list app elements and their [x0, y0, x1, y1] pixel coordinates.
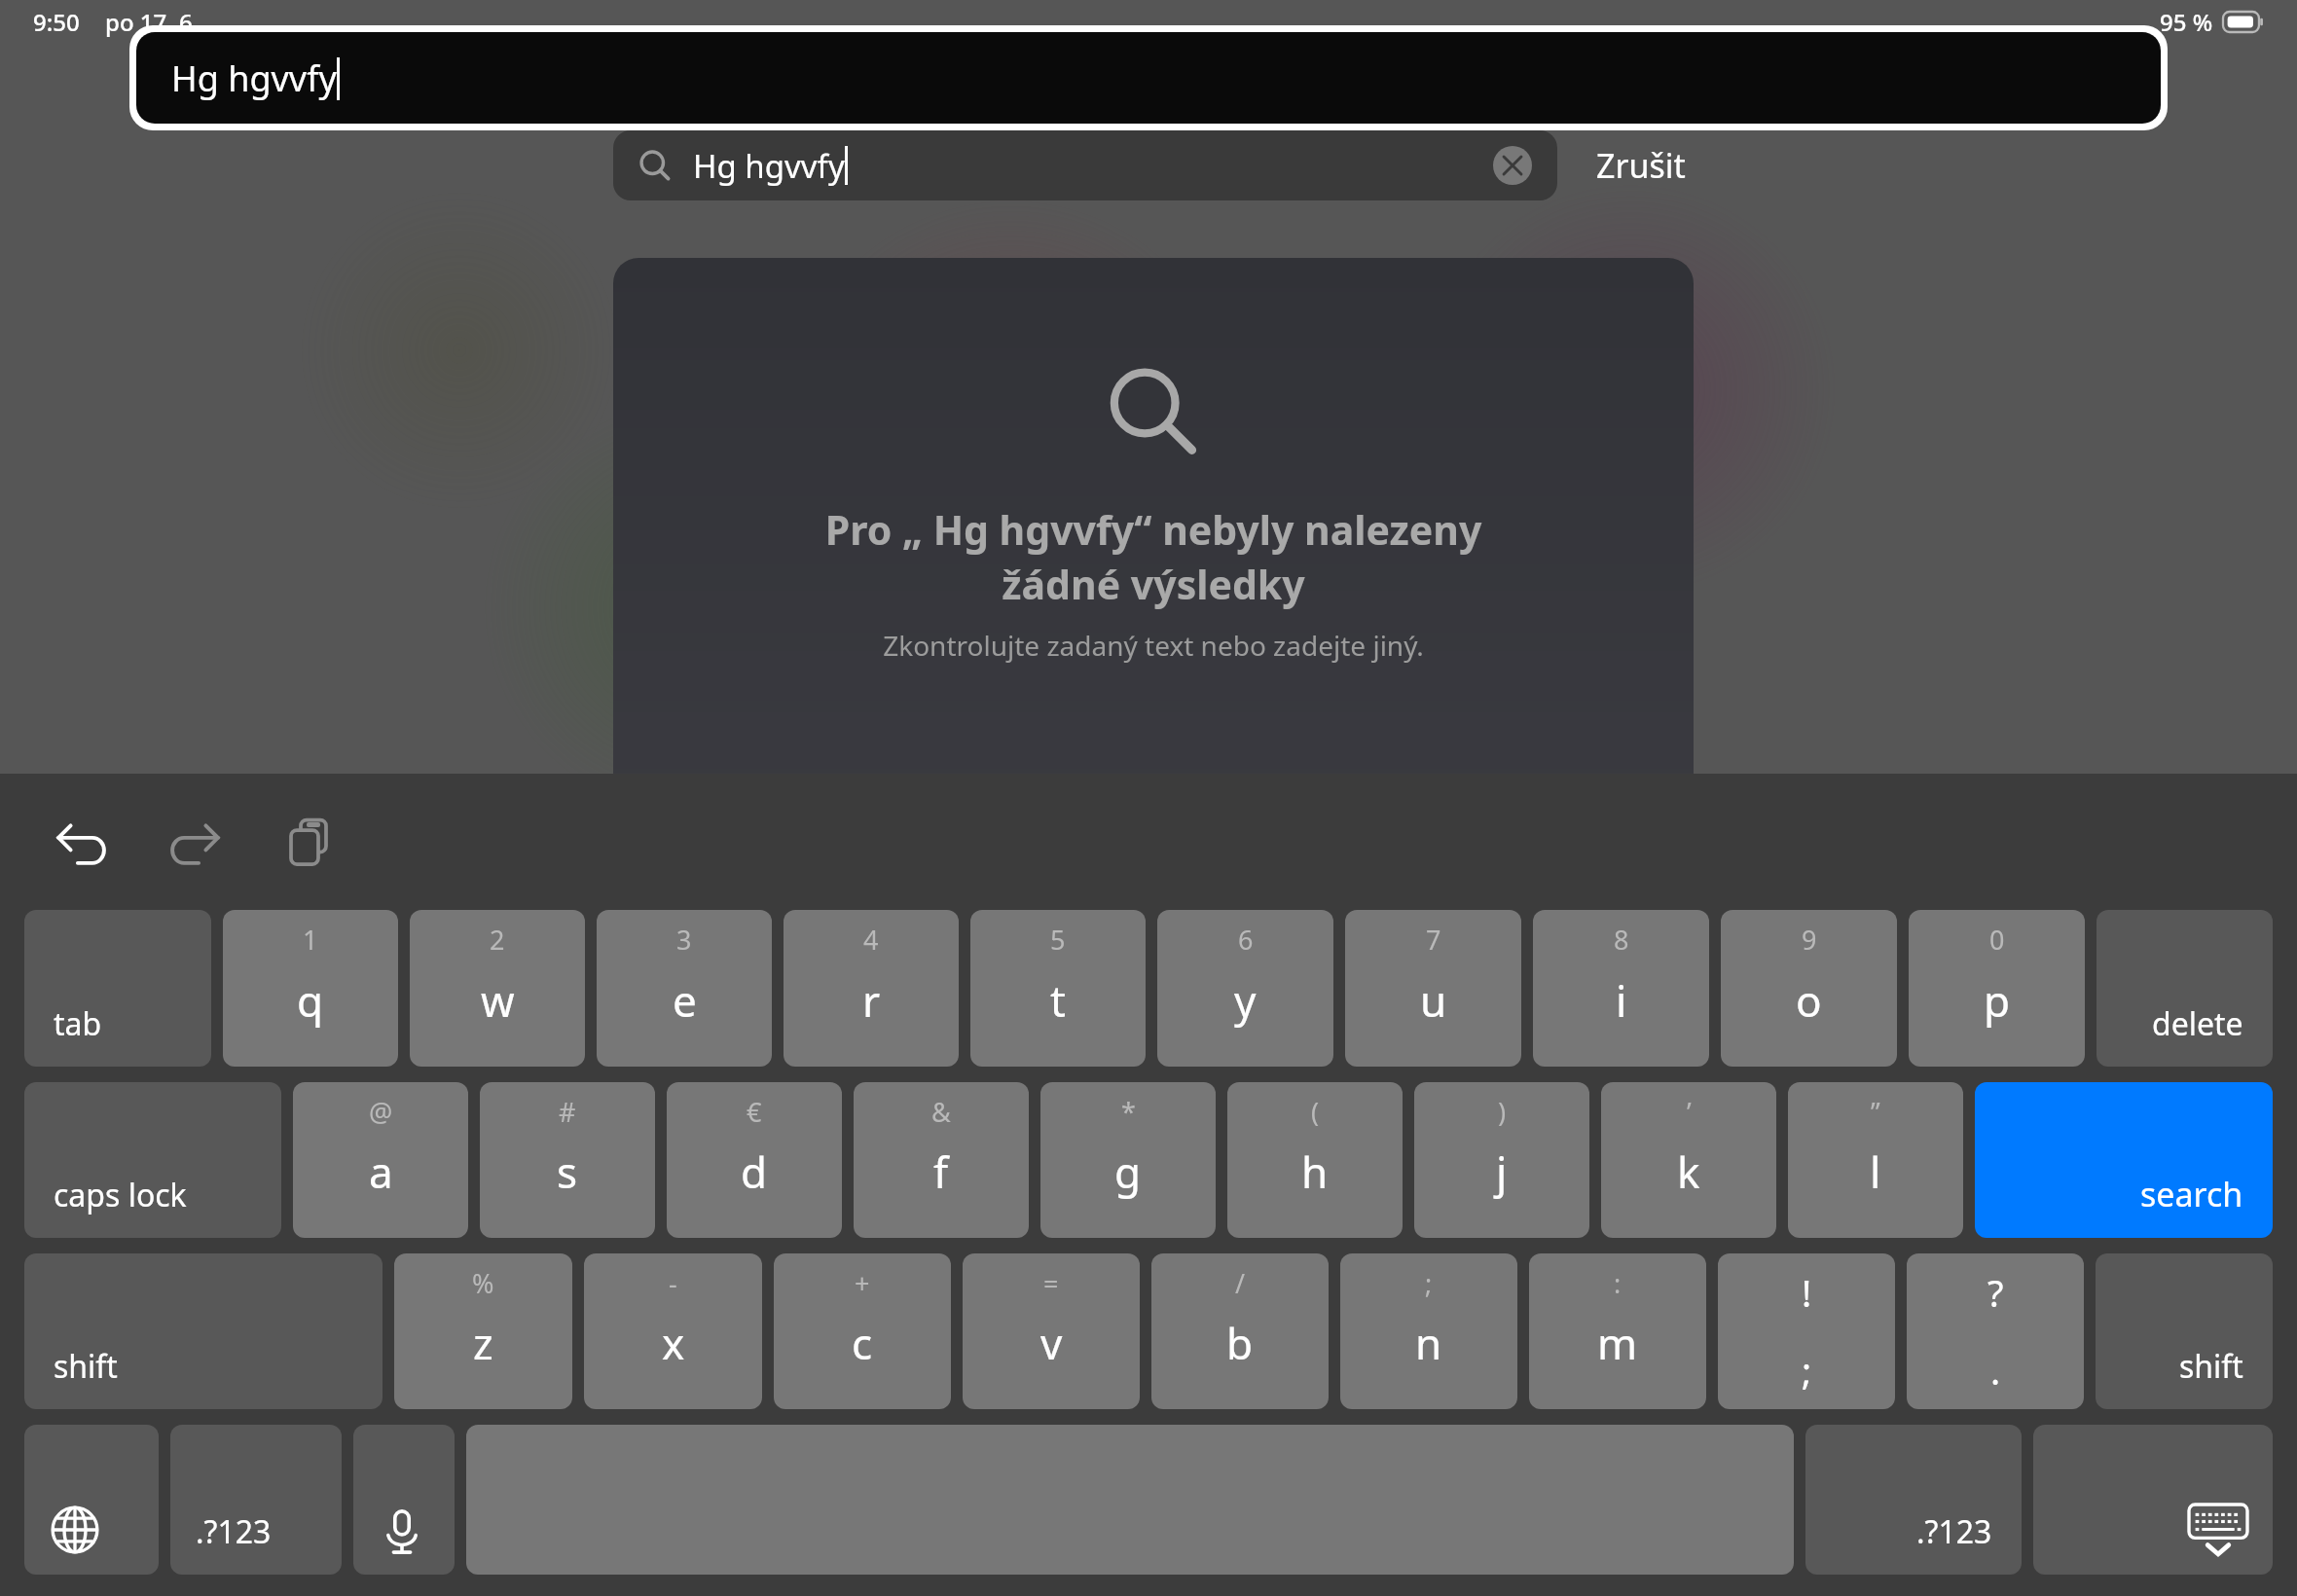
- staticText: €: [747, 1094, 762, 1130]
- staticText: p: [1984, 971, 2011, 1030]
- staticText: po 17. 6.: [105, 6, 200, 38]
- staticText: *: [1121, 1094, 1136, 1130]
- button[interactable]: .?123: [170, 1425, 342, 1575]
- staticText: 0: [1989, 922, 2005, 958]
- button[interactable]: ;: [1340, 1253, 1517, 1409]
- staticText: =: [1043, 1265, 1059, 1301]
- staticText: caps lock: [54, 1174, 187, 1216]
- staticText: delete: [2152, 1002, 2243, 1045]
- staticText: 2: [490, 922, 505, 958]
- button[interactable]: 9: [1721, 910, 1897, 1067]
- staticText: ’: [1687, 1094, 1692, 1130]
- staticText: -: [669, 1265, 677, 1301]
- button[interactable]: *: [1040, 1082, 1216, 1238]
- button[interactable]: #: [480, 1082, 655, 1238]
- button[interactable]: %: [394, 1253, 572, 1409]
- button[interactable]: Paste: [269, 800, 352, 884]
- staticText: h: [1301, 1143, 1329, 1201]
- button[interactable]: Zrušit: [1581, 135, 1701, 196]
- staticText: +: [855, 1265, 870, 1301]
- staticText: ”: [1871, 1094, 1880, 1130]
- staticText: shift: [2179, 1345, 2243, 1388]
- button[interactable]: Hide keyboard: [2033, 1425, 2273, 1575]
- button[interactable]: (: [1227, 1082, 1403, 1238]
- button[interactable]: Next keyboard: [24, 1425, 159, 1575]
- staticText: :: [1614, 1265, 1622, 1301]
- staticText: y: [1234, 971, 1257, 1030]
- staticText: f: [933, 1143, 949, 1201]
- staticText: z: [473, 1314, 493, 1372]
- button[interactable]: 4: [784, 910, 959, 1067]
- staticText: e: [673, 971, 697, 1030]
- button[interactable]: Hg hgvvfy: [613, 130, 1557, 200]
- button[interactable]: €: [667, 1082, 842, 1238]
- button[interactable]: &: [854, 1082, 1029, 1238]
- staticText: t: [1050, 971, 1066, 1030]
- staticText: d: [741, 1143, 768, 1201]
- button[interactable]: delete: [2096, 910, 2273, 1067]
- button[interactable]: 8: [1533, 910, 1709, 1067]
- staticText: @: [369, 1094, 393, 1130]
- button[interactable]: caps lock: [24, 1082, 281, 1238]
- button[interactable]: -: [584, 1253, 762, 1409]
- staticText: r: [862, 971, 881, 1030]
- button[interactable]: ?: [1907, 1253, 2084, 1409]
- button[interactable]: 6: [1157, 910, 1333, 1067]
- staticText: 1: [303, 922, 318, 958]
- button[interactable]: 1: [223, 910, 398, 1067]
- button[interactable]: @: [293, 1082, 468, 1238]
- button[interactable]: .?123: [1805, 1425, 2022, 1575]
- staticText: q: [297, 971, 324, 1030]
- staticText: x: [662, 1314, 685, 1372]
- button[interactable]: tab: [24, 910, 211, 1067]
- button[interactable]: 2: [410, 910, 585, 1067]
- button[interactable]: /: [1151, 1253, 1329, 1409]
- staticText: !: [1802, 1267, 1812, 1318]
- staticText: 8: [1614, 922, 1629, 958]
- staticText: 7: [1426, 922, 1441, 958]
- staticText: ): [1498, 1094, 1507, 1130]
- button[interactable]: 0: [1909, 910, 2085, 1067]
- button[interactable]: ”: [1788, 1082, 1963, 1238]
- button[interactable]: !: [1718, 1253, 1895, 1409]
- button[interactable]: Redo: [154, 800, 237, 884]
- staticText: tab: [54, 1002, 102, 1045]
- staticText: (: [1311, 1094, 1320, 1130]
- staticText: c: [852, 1314, 873, 1372]
- staticText: 6: [1238, 922, 1254, 958]
- button[interactable]: Undo: [39, 800, 123, 884]
- button[interactable]: Clear text: [1493, 146, 1532, 185]
- button[interactable]: 5: [970, 910, 1146, 1067]
- button[interactable]: +: [774, 1253, 951, 1409]
- staticText: n: [1415, 1314, 1442, 1372]
- button[interactable]: 7: [1345, 910, 1521, 1067]
- staticText: l: [1870, 1143, 1881, 1201]
- staticText: /: [1235, 1265, 1246, 1301]
- button[interactable]: 3: [597, 910, 772, 1067]
- staticText: shift: [54, 1345, 118, 1388]
- staticText: Hg hgvvfy: [171, 54, 337, 102]
- staticText: .: [1990, 1345, 2001, 1396]
- button[interactable]: ): [1414, 1082, 1589, 1238]
- staticText: &: [931, 1094, 951, 1130]
- button[interactable]: shift: [2096, 1253, 2273, 1409]
- staticText: j: [1496, 1143, 1508, 1201]
- staticText: Zkontrolujte zadaný text nebo zadejte ji…: [613, 627, 1694, 664]
- button[interactable]: search: [1975, 1082, 2273, 1238]
- staticText: g: [1114, 1143, 1142, 1201]
- staticText: 5: [1050, 922, 1066, 958]
- staticText: .?123: [1916, 1510, 1992, 1553]
- staticText: b: [1226, 1314, 1254, 1372]
- button[interactable]: =: [963, 1253, 1140, 1409]
- staticText: Pro „ Hg hgvvfy“ nebyly nalezeny žádné v…: [613, 502, 1694, 611]
- button[interactable]: ’: [1601, 1082, 1776, 1238]
- button[interactable]: :: [1529, 1253, 1706, 1409]
- button[interactable]: shift: [24, 1253, 383, 1409]
- staticText: search: [2140, 1172, 2243, 1216]
- button[interactable]: Hg hgvvfy: [136, 32, 2161, 124]
- button[interactable]: Dictation: [353, 1425, 455, 1575]
- staticText: ;: [1425, 1265, 1433, 1301]
- staticText: ?: [1987, 1267, 2004, 1318]
- staticText: ;: [1802, 1345, 1812, 1396]
